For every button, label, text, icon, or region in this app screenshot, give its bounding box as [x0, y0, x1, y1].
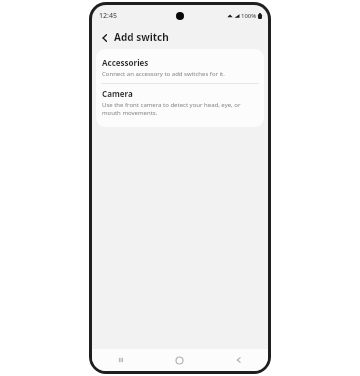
staticText: 100%	[241, 12, 257, 20]
staticText: Add switch	[114, 30, 169, 44]
staticText: Camera	[102, 88, 133, 99]
button[interactable]: Accessories	[96, 53, 264, 83]
staticText: 12:45	[99, 11, 117, 21]
staticText: Use the front camera to detect your head…	[102, 101, 256, 117]
staticText: Connect an accessory to add switches for…	[102, 70, 225, 78]
button[interactable]: Home	[150, 349, 209, 371]
button[interactable]: Back	[97, 30, 112, 45]
button[interactable]: Recents	[92, 349, 150, 371]
button[interactable]: Camera	[96, 84, 264, 122]
staticText: Accessories	[102, 57, 149, 68]
button[interactable]: Back	[209, 349, 268, 371]
